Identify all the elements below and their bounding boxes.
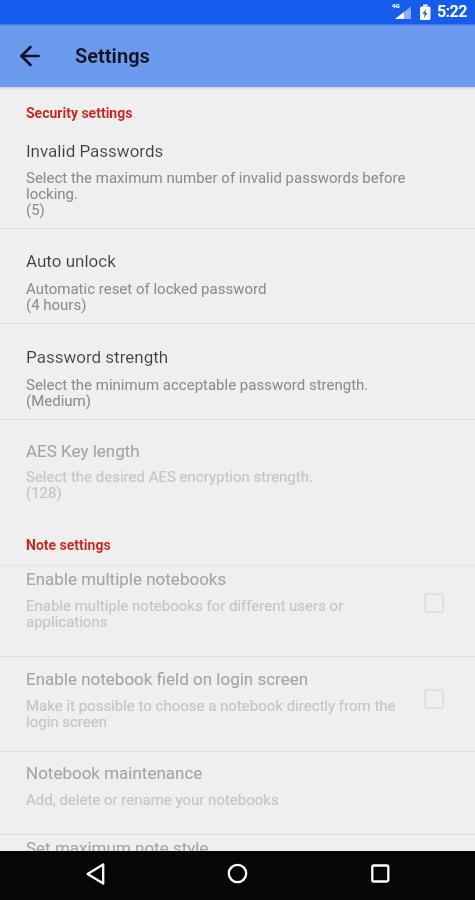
staticText: Notebook maintenance (26, 763, 203, 783)
staticText: (4 hours) (26, 296, 87, 314)
staticText: 4G (392, 2, 400, 9)
button[interactable] (0, 420, 475, 512)
button[interactable] (0, 229, 475, 323)
staticText: Invalid Passwords (26, 141, 164, 161)
staticText: (Medium) (26, 392, 91, 410)
button[interactable] (0, 657, 475, 751)
button[interactable] (0, 131, 475, 228)
button[interactable] (424, 689, 444, 709)
staticText: Select the maximum number of invalid pas… (26, 169, 406, 187)
staticText: Automatic reset of locked password (26, 280, 267, 298)
staticText: locking. (26, 185, 78, 203)
button[interactable] (0, 851, 159, 900)
staticText: Enable multiple notebooks for different … (26, 597, 344, 615)
button[interactable] (317, 851, 475, 900)
button[interactable] (0, 560, 475, 656)
staticText: AES Key length (26, 441, 140, 461)
button[interactable] (12, 39, 46, 73)
staticText: 5:22 (437, 2, 467, 21)
staticText: Security settings (26, 105, 133, 121)
staticText: Settings (75, 44, 150, 67)
button[interactable] (0, 324, 475, 419)
button[interactable] (159, 851, 317, 900)
staticText: login screen (26, 713, 108, 731)
staticText: applications (26, 613, 108, 631)
staticText: Auto unlock (26, 251, 116, 271)
button[interactable] (424, 593, 444, 613)
staticText: Enable notebook field on login screen (26, 669, 309, 689)
staticText: Enable multiple notebooks (26, 569, 227, 589)
staticText: Add, delete or rename your notebooks (26, 791, 279, 809)
button[interactable] (0, 752, 475, 834)
staticText: Select the minimum acceptable password s… (26, 376, 369, 394)
staticText: Note settings (26, 537, 111, 553)
staticText: Set maximum note style (26, 838, 209, 858)
staticText: (128) (26, 484, 62, 502)
staticText: Password strength (26, 347, 169, 367)
staticText: Make it possible to choose a notebook di… (26, 697, 396, 715)
staticText: (5) (26, 201, 45, 219)
staticText: Select the desired AES encryption streng… (26, 468, 313, 486)
